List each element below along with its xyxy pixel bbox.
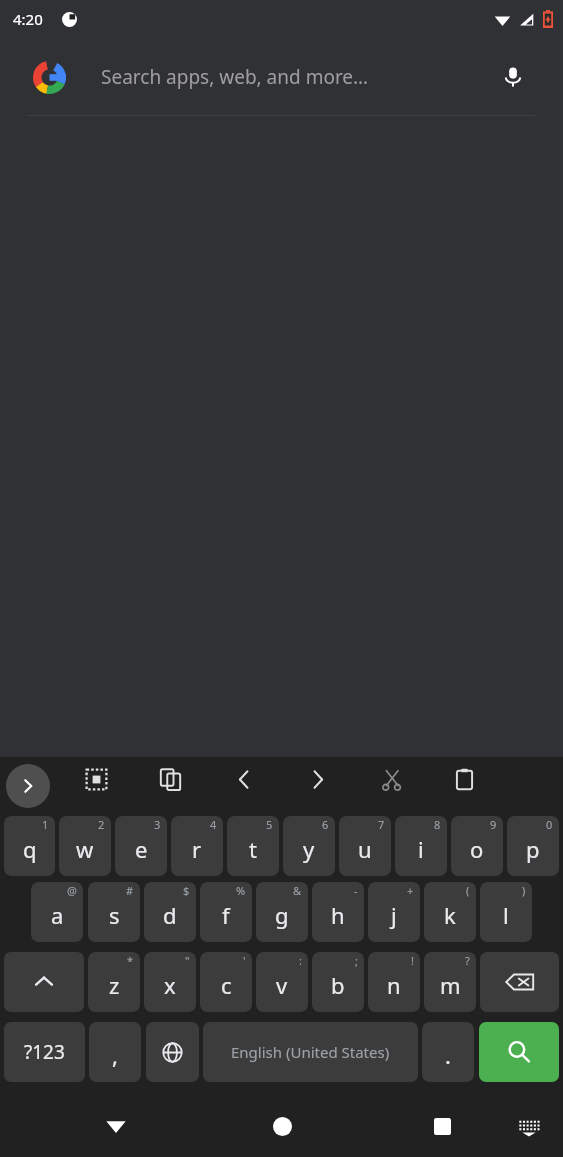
staticText: ) <box>522 883 526 898</box>
staticText: j <box>391 900 397 930</box>
staticText: y <box>303 834 315 864</box>
button[interactable]: Search apps, web, and more… <box>0 38 563 116</box>
button[interactable]: Voice search <box>491 55 535 99</box>
button[interactable]: z <box>88 952 140 1012</box>
button[interactable]: q <box>4 816 55 876</box>
button[interactable]: n <box>368 952 420 1012</box>
staticText: d <box>163 900 177 930</box>
staticText: : <box>299 953 302 968</box>
button[interactable]: f <box>200 882 252 942</box>
button[interactable]: Cursor right <box>295 757 339 801</box>
button[interactable]: r <box>171 816 223 876</box>
staticText: ! <box>411 953 414 968</box>
staticText: i <box>418 834 424 864</box>
staticText: k <box>444 900 456 930</box>
button[interactable]: Switch keyboard <box>509 1106 549 1146</box>
staticText: , <box>112 1040 118 1070</box>
button[interactable]: Cut <box>369 757 413 801</box>
button[interactable]: Home <box>258 1102 306 1150</box>
button[interactable]: v <box>256 952 308 1012</box>
staticText: n <box>387 970 401 1000</box>
staticText: u <box>358 834 372 864</box>
button[interactable]: t <box>227 816 279 876</box>
staticText: ? <box>465 953 470 968</box>
button[interactable]: English (United States) <box>203 1022 418 1082</box>
button[interactable]: p <box>507 816 559 876</box>
staticText: 3 <box>154 817 161 832</box>
button[interactable]: , <box>89 1022 141 1082</box>
staticText: m <box>440 970 461 1000</box>
button[interactable]: o <box>451 816 503 876</box>
staticText: English (United States) <box>231 1042 390 1062</box>
button[interactable]: l <box>480 882 532 942</box>
button[interactable]: . <box>422 1022 474 1082</box>
staticText: 8 <box>434 817 441 832</box>
staticText: Search apps, web, and more… <box>101 64 369 90</box>
staticText: 5 <box>266 817 273 832</box>
staticText: - <box>354 883 358 898</box>
button[interactable]: Paste <box>442 757 486 801</box>
staticText: & <box>293 883 302 898</box>
button[interactable]: g <box>256 882 308 942</box>
button[interactable]: s <box>88 882 140 942</box>
button[interactable]: Shift <box>4 952 84 1012</box>
button[interactable]: Select all <box>74 757 118 801</box>
staticText: a <box>51 900 64 930</box>
staticText: g <box>275 900 289 930</box>
staticText: x <box>164 970 176 1000</box>
button[interactable]: d <box>144 882 196 942</box>
staticText: # <box>126 883 134 898</box>
button[interactable]: y <box>283 816 335 876</box>
staticText: s <box>109 900 120 930</box>
staticText: w <box>76 834 94 864</box>
button[interactable]: Recent apps <box>418 1102 466 1150</box>
button[interactable]: x <box>144 952 196 1012</box>
staticText: 7 <box>378 817 385 832</box>
button[interactable]: Backspace <box>480 952 559 1012</box>
button[interactable]: w <box>59 816 111 876</box>
staticText: v <box>276 970 288 1000</box>
staticText: o <box>470 834 484 864</box>
button[interactable]: Search <box>479 1022 559 1082</box>
staticText: ' <box>243 953 246 968</box>
button[interactable]: Cursor left <box>222 757 266 801</box>
staticText: 6 <box>322 817 329 832</box>
staticText: ?123 <box>24 1039 65 1065</box>
staticText: @ <box>67 883 77 898</box>
button[interactable]: k <box>424 882 476 942</box>
staticText: ; <box>355 953 358 968</box>
staticText: c <box>221 970 232 1000</box>
staticText: z <box>109 970 120 1000</box>
button[interactable]: m <box>424 952 476 1012</box>
staticText: 4 <box>210 817 217 832</box>
staticText: ( <box>466 883 470 898</box>
staticText: e <box>135 834 148 864</box>
staticText: * <box>127 953 134 968</box>
button[interactable]: a <box>31 882 83 942</box>
button[interactable]: h <box>312 882 364 942</box>
staticText: + <box>407 883 414 898</box>
staticText: r <box>192 834 202 864</box>
button[interactable]: Change keyboard language <box>146 1022 199 1082</box>
button[interactable]: ?123 <box>4 1022 85 1082</box>
staticText: l <box>503 900 509 930</box>
staticText: q <box>23 834 37 864</box>
button[interactable]: Back <box>92 1102 140 1150</box>
staticText: . <box>445 1040 451 1070</box>
button[interactable]: i <box>395 816 447 876</box>
staticText: t <box>249 834 257 864</box>
staticText: 2 <box>98 817 105 832</box>
button[interactable]: j <box>368 882 420 942</box>
staticText: p <box>526 834 540 864</box>
button[interactable]: u <box>339 816 391 876</box>
button[interactable]: Expand toolbar <box>6 764 50 808</box>
staticText: % <box>236 883 246 898</box>
staticText: h <box>331 900 345 930</box>
staticText: 4:20 <box>13 9 43 29</box>
staticText: 9 <box>490 817 497 832</box>
button[interactable]: c <box>200 952 252 1012</box>
button[interactable]: e <box>115 816 167 876</box>
staticText: $ <box>183 883 190 898</box>
button[interactable]: Copy <box>148 757 192 801</box>
button[interactable]: b <box>312 952 364 1012</box>
